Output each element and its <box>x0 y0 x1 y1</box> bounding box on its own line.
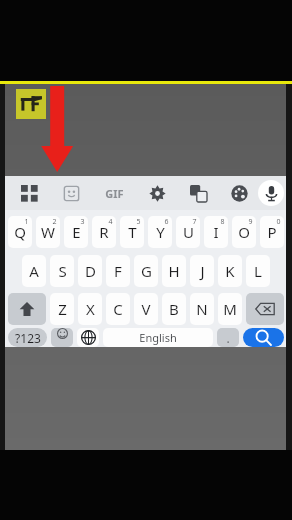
button[interactable]: . <box>217 328 239 347</box>
button[interactable]: Q <box>8 216 32 248</box>
staticText: Z <box>58 299 67 319</box>
button[interactable]: B <box>162 293 186 325</box>
button[interactable]: Voice input <box>258 180 284 206</box>
button[interactable]: Search <box>243 328 284 347</box>
button[interactable]: J <box>190 255 214 287</box>
button[interactable]: F <box>106 255 130 287</box>
staticText: ?123 <box>15 330 41 346</box>
staticText: E <box>72 222 81 242</box>
staticText: K <box>225 261 235 281</box>
staticText: 9 <box>248 217 253 227</box>
staticText: C <box>113 299 123 319</box>
staticText: U <box>183 222 194 242</box>
button[interactable]: S <box>50 255 74 287</box>
staticText: 6 <box>164 217 169 227</box>
button[interactable]: P <box>260 216 284 248</box>
button[interactable]: Settings <box>142 176 172 210</box>
button[interactable]: K <box>218 255 242 287</box>
staticText: 7 <box>192 217 197 227</box>
staticText: H <box>168 261 180 281</box>
staticText: G <box>141 261 152 281</box>
button[interactable]: L <box>246 255 270 287</box>
button[interactable]: Z <box>50 293 74 325</box>
button[interactable]: W <box>36 216 60 248</box>
button[interactable]: Themes <box>224 176 254 210</box>
button[interactable]: Backspace <box>246 293 284 325</box>
button[interactable]: Emoji and comma <box>51 328 73 347</box>
staticText: 2 <box>52 217 57 227</box>
staticText: 1 <box>24 217 29 227</box>
button[interactable]: GIF <box>96 176 132 210</box>
button[interactable]: Apps <box>14 176 44 210</box>
staticText: F <box>114 261 122 281</box>
staticText: I <box>213 222 219 242</box>
button[interactable]: Shift <box>8 293 46 325</box>
staticText: L <box>254 261 262 281</box>
staticText: P <box>267 222 277 242</box>
staticText: 8 <box>220 217 225 227</box>
staticText: 4 <box>108 217 113 227</box>
button[interactable]: X <box>78 293 102 325</box>
staticText: English <box>139 330 177 345</box>
button[interactable]: Y <box>148 216 172 248</box>
button[interactable]: Stickers <box>56 176 86 210</box>
staticText: 0 <box>276 217 281 227</box>
staticText: T <box>128 222 137 242</box>
button[interactable]: Translate <box>183 176 213 210</box>
other: Arrow pointing to sticker key <box>40 86 80 172</box>
staticText: Y <box>156 222 165 242</box>
button[interactable]: U <box>176 216 200 248</box>
button[interactable]: V <box>134 293 158 325</box>
button[interactable]: D <box>78 255 102 287</box>
button[interactable]: R <box>92 216 116 248</box>
staticText: N <box>196 299 208 319</box>
staticText: B <box>169 299 179 319</box>
staticText: R <box>99 222 109 242</box>
button[interactable]: English <box>103 328 213 347</box>
staticText: V <box>141 299 151 319</box>
staticText: GIF <box>105 186 124 201</box>
staticText: 5 <box>136 217 141 227</box>
button[interactable]: Change keyboard language <box>77 328 99 347</box>
staticText: S <box>58 261 67 281</box>
staticText: D <box>85 261 96 281</box>
button[interactable]: A <box>22 255 46 287</box>
button[interactable]: O <box>232 216 256 248</box>
button[interactable]: ?123 <box>8 328 47 347</box>
button[interactable]: E <box>64 216 88 248</box>
button[interactable]: M <box>218 293 242 325</box>
staticText: W <box>41 222 55 242</box>
staticText: O <box>238 222 250 242</box>
button[interactable]: T <box>120 216 144 248</box>
button[interactable]: G <box>134 255 158 287</box>
staticText: 3 <box>80 217 85 227</box>
button[interactable]: N <box>190 293 214 325</box>
staticText: Q <box>14 222 26 242</box>
staticText: J <box>200 261 205 281</box>
button[interactable]: I <box>204 216 228 248</box>
staticText: M <box>223 299 237 319</box>
staticText: A <box>29 261 39 281</box>
staticText: . <box>226 330 230 346</box>
button[interactable]: C <box>106 293 130 325</box>
staticText: X <box>86 299 95 319</box>
button[interactable]: H <box>162 255 186 287</box>
